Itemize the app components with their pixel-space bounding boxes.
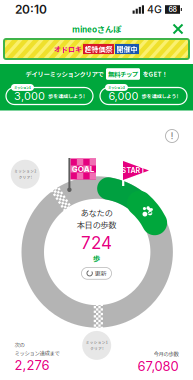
- staticText: ミッション2: [108, 85, 125, 90]
- button[interactable]: 6,000: [100, 84, 187, 104]
- staticText: GOAL: [72, 164, 95, 174]
- staticText: ミッション達成まで: [14, 349, 59, 357]
- button[interactable]: 閉じる: [168, 19, 188, 39]
- staticText: 更新: [94, 269, 106, 278]
- staticText: START: [121, 166, 145, 175]
- staticText: 歩を達成しよう!: [48, 92, 85, 100]
- staticText: 本日の歩数: [76, 219, 116, 230]
- staticText: 67,080: [137, 358, 178, 374]
- staticText: デイリーミッションクリアで: [25, 69, 103, 79]
- staticText: 20:10: [15, 2, 47, 17]
- button[interactable]: ヘルプ: [165, 129, 178, 142]
- staticText: 6,000: [108, 89, 138, 103]
- staticText: クリア!: [90, 346, 103, 351]
- staticText: 4G: [147, 3, 162, 16]
- staticText: mineoさんぽ: [72, 23, 121, 35]
- button[interactable]: 更新: [81, 267, 112, 279]
- button[interactable]: オドロキ: [0, 39, 193, 59]
- staticText: !: [170, 131, 173, 141]
- staticText: 724: [81, 232, 112, 253]
- staticText: 3,000: [14, 89, 45, 103]
- staticText: クリア!: [19, 175, 32, 180]
- staticText: をGET！: [142, 69, 167, 79]
- staticText: 開催中: [116, 44, 137, 54]
- staticText: 無料チップ: [108, 69, 138, 79]
- staticText: ミッション1: [14, 85, 31, 90]
- staticText: 超特価祭: [84, 44, 112, 54]
- staticText: 68: [169, 5, 177, 14]
- staticText: 2,276: [14, 357, 49, 373]
- staticText: ミッション2: [14, 168, 36, 174]
- staticText: 歩を達成しよう!: [141, 92, 178, 100]
- button[interactable]: 3,000: [6, 84, 93, 104]
- staticText: オドロキ: [54, 44, 82, 54]
- staticText: ミッション1: [86, 340, 108, 345]
- staticText: 歩: [93, 253, 100, 263]
- staticText: 次の: [14, 341, 24, 349]
- staticText: あなたの: [80, 207, 112, 219]
- staticText: 今月の歩数: [153, 350, 178, 358]
